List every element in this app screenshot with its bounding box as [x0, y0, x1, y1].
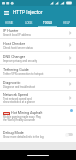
button[interactable]: LOGS — [19, 19, 38, 26]
button[interactable]: IP Hunter — [0, 27, 76, 38]
button[interactable]: Debug Mode — [0, 126, 76, 142]
staticText: Check host/server status — [3, 46, 33, 49]
staticText: Diagnostic — [3, 81, 21, 85]
button[interactable]: TOOLS — [38, 19, 57, 26]
button[interactable]: Diagnostic — [0, 78, 76, 90]
staticText: Test network speed and — [3, 97, 32, 100]
staticText: Tether VPN connection to hotspot — [3, 72, 44, 75]
staticText: Hot Mining Asphalt — [11, 111, 43, 115]
staticText: the World, Reality Accurate — [3, 118, 35, 121]
staticText: HTTP Injector — [13, 10, 43, 16]
staticText: HOME — [5, 21, 14, 24]
button[interactable]: HELP — [57, 19, 76, 26]
staticText: TOOLS — [43, 21, 52, 24]
staticText: NEW — [4, 112, 9, 115]
staticText: Tethering Guide — [3, 68, 29, 72]
staticText: IP Hunter — [3, 29, 19, 33]
button[interactable]: Debug Mode toggle — [65, 132, 73, 137]
staticText: HELP — [63, 21, 71, 24]
staticText: Diagnose and troubleshoot — [3, 85, 36, 88]
staticText: LOGS — [25, 21, 33, 24]
staticText: show statistics at a glance — [3, 100, 35, 103]
staticText: Search local IP address — [3, 33, 31, 36]
button[interactable]: DNS Changer — [0, 52, 76, 64]
staticText: Debug Mode — [3, 131, 24, 135]
staticText: Host Checker — [3, 42, 26, 46]
button[interactable]: Network Speed — [0, 91, 76, 105]
staticText: DNS Changer — [3, 55, 25, 59]
staticText: Improve privacy and security — [3, 59, 38, 62]
button[interactable]: Host Checker — [0, 39, 76, 51]
button[interactable]: Tethering Guide — [0, 65, 76, 77]
staticText: Mobile gaming made easy. Play — [3, 115, 41, 118]
button[interactable]: NEW — [0, 106, 76, 125]
staticText: Show more detailed info in the log — [3, 135, 44, 138]
staticText: Network Speed — [3, 93, 28, 97]
button[interactable]: Open navigation menu — [3, 8, 10, 18]
button[interactable]: HOME — [0, 19, 19, 26]
